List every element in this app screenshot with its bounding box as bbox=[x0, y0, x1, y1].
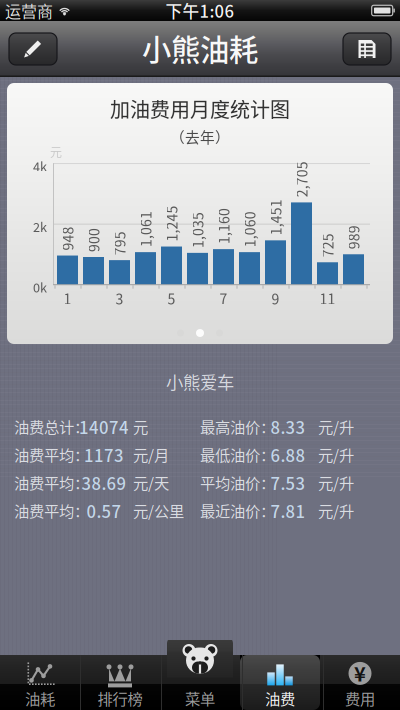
staticText: 1,061 bbox=[123, 215, 159, 235]
button[interactable]: 菜单 bbox=[160, 655, 240, 710]
staticText: 7.81 bbox=[270, 499, 305, 523]
button[interactable]: ¥ bbox=[320, 655, 400, 710]
staticText: 0.57 bbox=[86, 499, 121, 523]
staticText: 元/升 bbox=[318, 499, 354, 521]
staticText: 795 bbox=[97, 223, 121, 243]
staticText: 下午1:06 bbox=[165, 0, 234, 22]
staticText: 元/升 bbox=[318, 443, 354, 465]
button[interactable]: 记录列表 bbox=[343, 33, 391, 65]
staticText: 6.88 bbox=[270, 443, 305, 467]
staticText: 14074 bbox=[79, 415, 129, 439]
staticText: 小熊油耗 bbox=[142, 27, 258, 69]
staticText: 989 bbox=[331, 217, 355, 237]
staticText: 1,245 bbox=[149, 209, 185, 230]
staticText: 油费总计： bbox=[14, 415, 89, 437]
staticText: 排行榜 bbox=[97, 687, 142, 709]
staticText: ¥ bbox=[354, 658, 366, 687]
staticText: 小熊爱车 bbox=[166, 369, 234, 394]
staticText: 38.69 bbox=[81, 471, 126, 495]
staticText: （去年） bbox=[170, 126, 230, 147]
staticText: 费用 bbox=[345, 687, 375, 709]
staticText: 1,060 bbox=[227, 215, 263, 235]
staticText: 加油费用月度统计图 bbox=[110, 94, 290, 123]
staticText: 最低油价： bbox=[200, 443, 275, 465]
staticText: 元/月 bbox=[133, 443, 169, 465]
button[interactable]: 编辑 bbox=[9, 33, 57, 65]
staticText: 5 bbox=[167, 288, 175, 308]
staticText: 油费平均： bbox=[14, 443, 89, 465]
button[interactable]: 排行榜 bbox=[80, 655, 160, 710]
staticText: 元/天 bbox=[133, 471, 169, 493]
staticText: 948 bbox=[45, 218, 69, 239]
staticText: 2,705 bbox=[279, 165, 315, 185]
staticText: 元/升 bbox=[318, 415, 354, 437]
staticText: 油费 bbox=[265, 687, 295, 709]
staticText: 油耗 bbox=[25, 687, 55, 709]
staticText: 11 bbox=[319, 288, 335, 308]
staticText: 7 bbox=[219, 288, 227, 308]
staticText: 1,451 bbox=[253, 203, 289, 223]
button[interactable]: 油耗 bbox=[0, 655, 80, 710]
staticText: 元 bbox=[133, 415, 148, 437]
staticText: 元/升 bbox=[318, 471, 354, 493]
staticText: 4k bbox=[33, 157, 47, 175]
staticText: 7.53 bbox=[270, 471, 305, 495]
staticText: 8.33 bbox=[270, 415, 305, 439]
staticText: 725 bbox=[305, 225, 329, 245]
staticText: 最近油价： bbox=[200, 499, 275, 521]
staticText: 油费平均： bbox=[14, 471, 89, 493]
staticText: 最高油价： bbox=[200, 415, 275, 437]
staticText: 菜单 bbox=[185, 687, 215, 709]
staticText: 油费平均： bbox=[14, 499, 89, 521]
staticText: 平均油价： bbox=[200, 471, 275, 493]
staticText: 运营商 bbox=[5, 0, 53, 22]
staticText: 2k bbox=[33, 217, 47, 235]
button[interactable]: 油费 bbox=[240, 655, 320, 710]
staticText: 3 bbox=[115, 288, 123, 308]
staticText: 0k bbox=[33, 278, 47, 296]
staticText: 1,160 bbox=[201, 212, 237, 232]
staticText: 元/公里 bbox=[133, 499, 184, 521]
staticText: 1 bbox=[63, 288, 71, 308]
staticText: 9 bbox=[271, 288, 279, 308]
staticText: 1173 bbox=[84, 443, 124, 467]
staticText: 1,035 bbox=[175, 216, 211, 236]
button[interactable]: 菜单 bbox=[167, 640, 233, 681]
staticText: 900 bbox=[71, 220, 95, 240]
staticText: 元 bbox=[50, 143, 62, 161]
